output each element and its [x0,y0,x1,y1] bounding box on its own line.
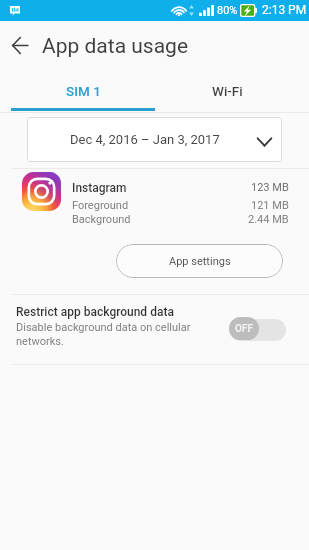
staticText: Wi-Fi [212,83,243,99]
button[interactable]: Dec 4, 2016 – Jan 3, 2017 [27,117,282,162]
button[interactable]: Wi-Fi [150,72,304,109]
staticText: App data usage [42,34,189,59]
staticText: Foreground [72,199,129,212]
staticText: 2.44 MB [248,213,289,226]
staticText: Restrict app background data [16,305,174,319]
staticText: 2:13 PM [262,3,307,17]
staticText: 121 MB [251,199,289,212]
button[interactable]: SIM 1 [6,72,160,109]
staticText: 80% [217,4,238,17]
staticText: Background [72,213,131,226]
button[interactable]: Back [0,24,42,66]
staticText: Instagram [72,181,127,195]
staticText: SIM 1 [66,83,101,99]
button[interactable]: Restrict app background data [229,317,287,340]
button[interactable]: App settings [116,244,283,278]
staticText: OFF [235,323,253,335]
staticText: 123 MB [251,181,289,194]
staticText: App settings [169,255,231,268]
staticText: Dec 4, 2016 – Jan 3, 2017 [70,132,220,147]
staticText: Disable background data on cellular netw… [16,321,191,348]
